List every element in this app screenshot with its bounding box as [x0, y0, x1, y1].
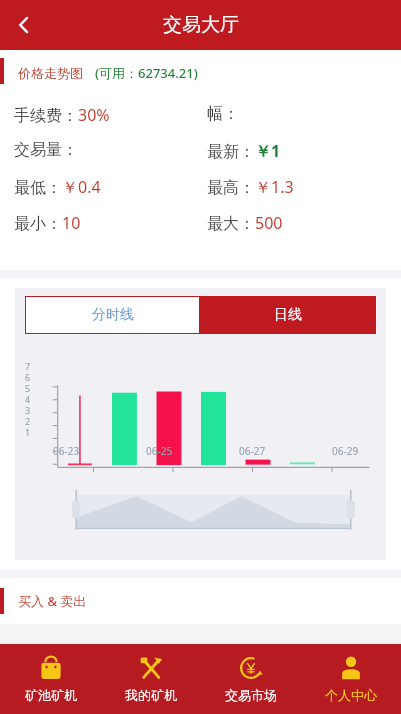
staticText: 交易大厅 — [163, 13, 239, 37]
staticText: 最大： — [207, 214, 255, 234]
staticText: ￥1.3 — [255, 176, 294, 198]
staticText: 06-27 — [239, 444, 283, 458]
staticText: 手续费： — [14, 106, 78, 126]
staticText: 最新： — [207, 142, 255, 162]
button[interactable]: 矿池矿机 — [0, 644, 101, 714]
staticText: 30% — [78, 104, 110, 126]
staticText: 买入 & 卖出 — [18, 592, 87, 610]
staticText: 10 — [62, 212, 81, 234]
staticText: 交易市场 — [225, 687, 277, 703]
staticText: 最小： — [14, 214, 62, 234]
staticText: 6 — [25, 371, 31, 382]
staticText: 5 — [25, 382, 31, 393]
staticText: ￥0.4 — [62, 176, 101, 198]
button[interactable]: 日线 — [200, 296, 376, 334]
button[interactable]: 个人中心 — [301, 644, 401, 714]
staticText: 最高： — [207, 178, 255, 198]
staticText: 最低： — [14, 178, 62, 198]
staticText: 价格走势图 — [18, 65, 83, 81]
staticText: 个人中心 — [325, 687, 377, 703]
staticText: ￥1 — [255, 140, 281, 162]
staticText: 交易量： — [14, 140, 78, 160]
staticText: 1 — [25, 426, 31, 437]
staticText: (可用：62734.21) — [95, 64, 198, 82]
staticText: 06-23 — [53, 444, 97, 458]
staticText: 500 — [255, 212, 283, 234]
staticText: 3 — [25, 404, 31, 415]
button[interactable]: Back — [0, 1, 48, 49]
staticText: 7 — [25, 360, 31, 371]
staticText: 矿池矿机 — [25, 687, 77, 703]
button[interactable]: 分时线 — [25, 296, 200, 334]
staticText: 我的矿机 — [125, 687, 177, 703]
staticText: 4 — [25, 393, 31, 404]
staticText: 06-25 — [146, 444, 190, 458]
staticText: 2 — [25, 415, 31, 426]
staticText: 日线 — [274, 306, 302, 324]
staticText: 幅： — [207, 104, 239, 124]
staticText: 06-29 — [332, 444, 376, 458]
button[interactable]: 交易市场 — [201, 644, 301, 714]
staticText: 分时线 — [92, 306, 134, 324]
button[interactable]: 我的矿机 — [101, 644, 201, 714]
